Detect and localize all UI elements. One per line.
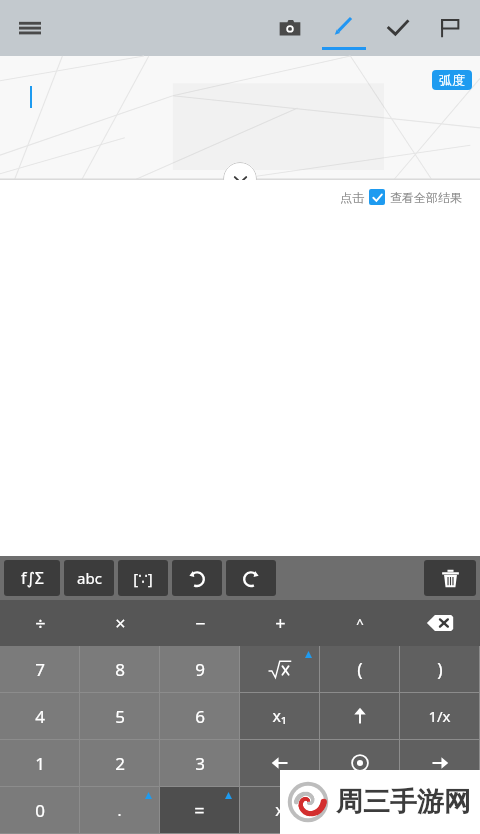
button[interactable]: Expand [223,162,257,196]
staticText: 查看全部结果 [390,190,462,205]
button[interactable]: Undo [172,560,222,596]
button[interactable]: x₁ [240,693,319,739]
button[interactable]: Edit [316,0,372,56]
button[interactable]: 7 [0,646,79,692]
button[interactable] [320,787,480,833]
button[interactable]: 0 [0,787,79,833]
staticText: x₁ [272,705,287,727]
staticText: [∵] [133,568,153,588]
staticText: . [117,800,122,820]
button[interactable]: ( [320,646,399,692]
button[interactable]: 5 [80,693,159,739]
staticText: 6 [195,705,205,728]
staticText: ) [437,657,443,682]
staticText: 8 [115,658,125,681]
button[interactable] [240,646,319,692]
staticText: x [275,799,284,821]
staticText: + [275,611,286,636]
staticText: 4 [35,705,45,728]
button[interactable]: 2 [80,740,159,786]
button[interactable]: Confirm [372,0,424,56]
staticText: ( [357,657,363,682]
button[interactable]: Flag [424,0,476,56]
button[interactable]: Camera [264,0,316,56]
staticText: 5 [115,705,125,728]
staticText: ÷ [35,611,46,636]
staticText: 2 [115,752,125,775]
button[interactable]: . [80,787,159,833]
button[interactable]: Menu [6,4,54,52]
button[interactable]: Redo [226,560,276,596]
staticText: 弧度 [439,72,465,88]
staticText: ^ [356,614,364,632]
staticText: 9 [195,658,205,681]
staticText: f∫Σ [21,567,44,589]
staticText: 0 [35,799,45,822]
button[interactable]: Move left [240,740,319,786]
button[interactable]: × [80,600,160,646]
button[interactable]: abc [64,560,114,596]
button[interactable]: x [240,787,319,833]
button[interactable]: ) [400,646,479,692]
staticText: 周三手游网 [336,785,471,819]
staticText: 点击 [340,190,364,205]
button[interactable]: 弧度 [432,70,472,90]
button[interactable]: ^ [320,600,400,646]
button[interactable]: 1 [0,740,79,786]
staticText: = [194,798,205,823]
staticText: 1/x [428,706,451,726]
button[interactable]: 3 [160,740,239,786]
button[interactable]: 4 [0,693,79,739]
button[interactable]: Cursor [320,740,399,786]
button[interactable]: − [160,600,240,646]
button[interactable]: 8 [80,646,159,692]
staticText: 1 [35,752,45,775]
button[interactable]: Delete [424,560,476,596]
staticText: − [195,611,206,636]
button[interactable]: Move right [400,740,479,786]
button[interactable]: = [160,787,239,833]
button[interactable]: ÷ [0,600,80,646]
button[interactable]: 1/x [400,693,479,739]
staticText: × [115,611,126,636]
staticText: 7 [35,658,45,681]
button[interactable]: [∵] [118,560,168,596]
button[interactable]: 9 [160,646,239,692]
button[interactable]: 点击 [0,180,462,214]
button[interactable]: + [240,600,320,646]
staticText: abc [77,568,102,588]
staticText: 3 [195,752,205,775]
button[interactable]: Backspace [400,600,480,646]
button[interactable]: f∫Σ [4,560,60,596]
button[interactable]: Move up [320,693,399,739]
button[interactable]: 6 [160,693,239,739]
